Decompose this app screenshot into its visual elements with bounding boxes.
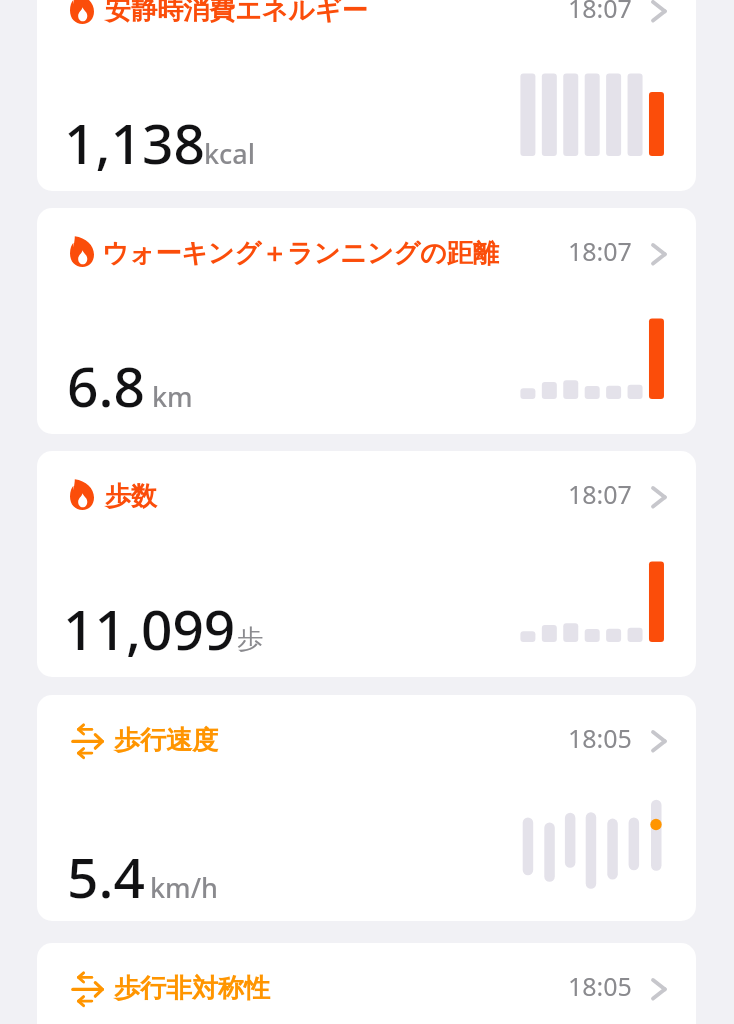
button[interactable]: 歩数: [37, 451, 696, 677]
staticText: 6.8: [67, 348, 145, 423]
staticText: 安静時消費エネルギー: [105, 0, 368, 27]
other: 詳細を表示: [651, 0, 667, 23]
staticText: 11,099: [63, 591, 236, 666]
staticText: 18:07: [568, 0, 632, 25]
other: 詳細を表示: [651, 978, 667, 1001]
button[interactable]: 詳細を表示: [651, 486, 667, 509]
staticText: 18:07: [568, 234, 632, 268]
staticText: 5.4: [67, 839, 145, 914]
button[interactable]: 詳細を表示: [651, 0, 667, 23]
staticText: 1,138: [64, 105, 205, 180]
staticText: 歩数: [105, 480, 157, 513]
button[interactable]: 詳細を表示: [651, 978, 667, 1001]
staticText: kcal: [204, 135, 256, 172]
staticText: 歩行非対称性: [114, 972, 270, 1005]
staticText: 18:05: [568, 969, 632, 1003]
button[interactable]: 詳細を表示: [651, 243, 667, 266]
staticText: 18:05: [568, 721, 632, 755]
staticText: km/h: [150, 869, 218, 906]
button[interactable]: ウォーキング＋ランニングの距離: [37, 208, 696, 434]
staticText: km: [152, 378, 193, 415]
staticText: 歩行速度: [114, 724, 218, 757]
other: 詳細を表示: [651, 243, 667, 266]
staticText: 歩: [237, 623, 263, 656]
button[interactable]: 詳細を表示: [651, 730, 667, 753]
other: 詳細を表示: [651, 730, 667, 753]
other: 詳細を表示: [651, 486, 667, 509]
staticText: 18:07: [568, 477, 632, 511]
button[interactable]: 安静時消費エネルギー: [37, 0, 696, 191]
button[interactable]: 歩行非対称性: [37, 943, 696, 1024]
staticText: ウォーキング＋ランニングの距離: [102, 237, 499, 270]
button[interactable]: 歩行速度: [37, 695, 696, 921]
